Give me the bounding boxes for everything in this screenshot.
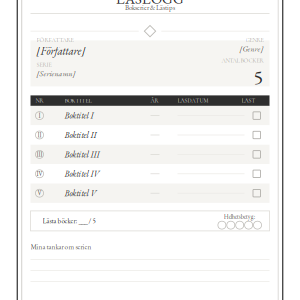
button[interactable]: V bbox=[30, 183, 269, 203]
staticText: Boktitel I bbox=[64, 110, 93, 121]
staticText: III bbox=[36, 150, 42, 158]
staticText: BOKTITEL bbox=[64, 97, 91, 104]
staticText: GENRE bbox=[245, 36, 263, 44]
staticText: Lästa böcker: ___ / 5 bbox=[42, 216, 95, 225]
staticText: ÅR bbox=[150, 97, 158, 104]
staticText: Boktitel II bbox=[64, 129, 96, 140]
staticText: [Genre] bbox=[239, 44, 263, 54]
staticText: Boktitel V bbox=[64, 188, 96, 199]
staticText: IV bbox=[36, 170, 42, 178]
button[interactable]: I bbox=[30, 106, 269, 125]
staticText: ANTAL BÖCKER bbox=[221, 57, 263, 64]
staticText: 5 bbox=[253, 64, 263, 90]
staticText: Bokserier & Lästips bbox=[125, 3, 175, 12]
staticText: Mina tankar om serien bbox=[30, 242, 91, 251]
staticText: II bbox=[37, 131, 41, 139]
button[interactable]: III bbox=[30, 145, 269, 164]
staticText: Helhetsbetyg: bbox=[224, 213, 256, 221]
button[interactable]: IV bbox=[30, 164, 269, 183]
staticText: Boktitel IV bbox=[64, 168, 99, 179]
staticText: FÖRFATTARE bbox=[36, 36, 73, 44]
button[interactable]: II bbox=[30, 125, 269, 145]
staticText: Boktitel III bbox=[64, 149, 99, 160]
staticText: LÄSDATUM bbox=[177, 97, 208, 104]
staticText: LÄSLOGG bbox=[116, 0, 184, 8]
staticText: [Serienamn] bbox=[36, 68, 75, 79]
staticText: NR bbox=[35, 97, 43, 104]
staticText: V bbox=[37, 189, 41, 197]
staticText: LÄST bbox=[241, 97, 255, 104]
staticText: SERIE bbox=[36, 61, 51, 68]
staticText: I bbox=[38, 112, 40, 120]
staticText: [Författare] bbox=[36, 44, 85, 58]
